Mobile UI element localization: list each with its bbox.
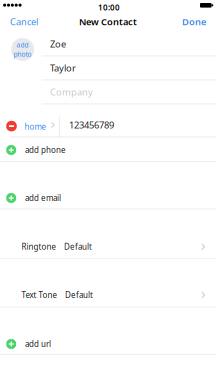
staticText: 10:00 <box>98 2 120 13</box>
button[interactable]: add phone <box>0 138 216 162</box>
staticText: New Contact <box>79 15 137 28</box>
staticText: photo <box>14 50 32 59</box>
staticText: Zoe <box>50 38 66 50</box>
staticText: add phone <box>25 145 66 155</box>
staticText: add url <box>25 339 51 349</box>
staticText: Cancel <box>10 15 38 28</box>
button[interactable]: Done <box>177 11 211 32</box>
staticText: add <box>17 40 29 49</box>
staticText: Ringtone <box>21 241 56 252</box>
staticText: Text Tone <box>21 290 57 300</box>
button[interactable]: Text Tone <box>0 283 216 307</box>
staticText: home <box>25 121 47 132</box>
staticText: Taylor <box>50 62 76 74</box>
staticText: 123456789 <box>69 119 114 131</box>
staticText: add email <box>25 193 61 203</box>
button[interactable]: add photo <box>11 38 34 61</box>
button[interactable]: add url <box>0 332 216 356</box>
button[interactable]: add email <box>0 186 216 210</box>
staticText: Company <box>50 86 93 98</box>
button[interactable]: home <box>0 113 59 137</box>
button[interactable]: Cancel <box>5 11 43 32</box>
button[interactable]: Ringtone <box>0 235 216 259</box>
staticText: Default <box>65 290 93 300</box>
staticText: Default <box>64 241 92 252</box>
staticText: Done <box>182 15 206 28</box>
